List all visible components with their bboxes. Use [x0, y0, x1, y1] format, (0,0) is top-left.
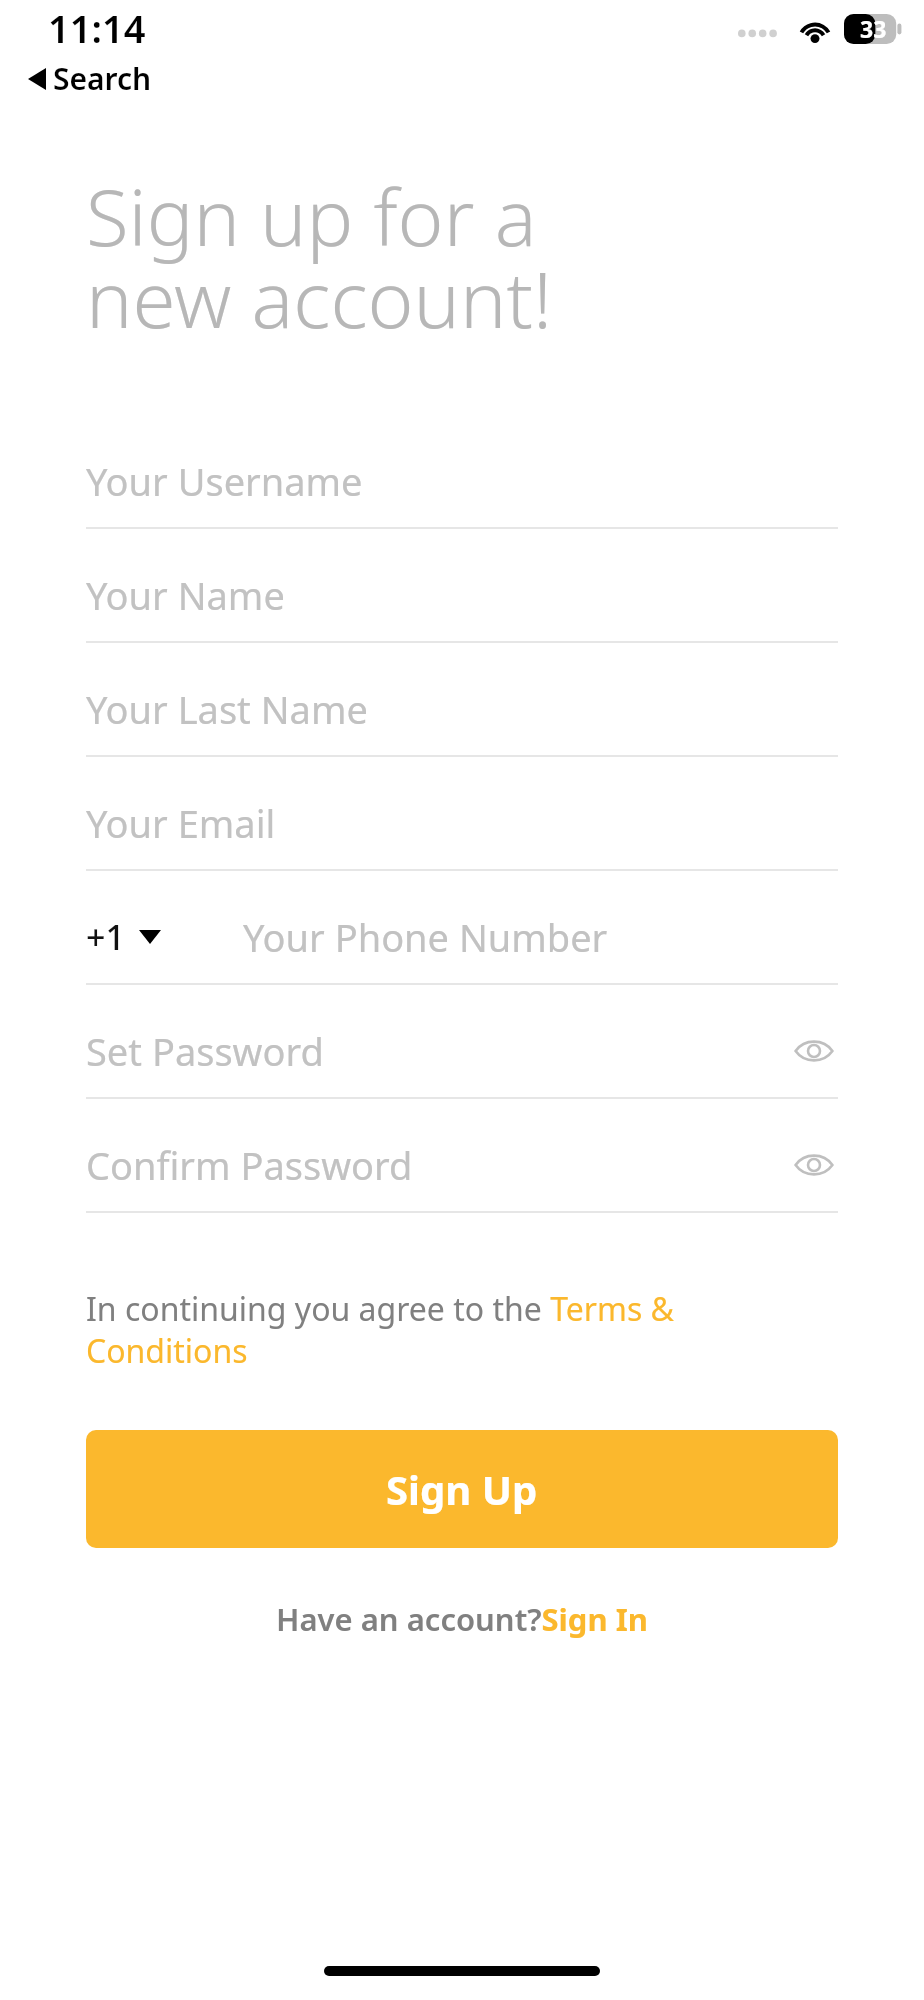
button[interactable]: Your Email: [86, 777, 838, 871]
button[interactable]: Your Last Name: [86, 663, 838, 757]
button[interactable]: Sign Up: [86, 1430, 838, 1548]
button[interactable]: Your Phone Number: [243, 911, 838, 963]
button[interactable]: +1: [86, 914, 167, 960]
staticText: Sign up for a new account!: [86, 163, 553, 351]
button[interactable]: Your Username: [86, 435, 838, 529]
button[interactable]: Set Password: [86, 1005, 838, 1099]
staticText: Sign Up: [386, 1462, 538, 1516]
staticText: Confirm Password: [86, 1139, 790, 1191]
button[interactable]: Show password: [790, 1027, 838, 1075]
staticText: 11:14: [48, 2, 146, 54]
staticText: 33: [860, 13, 887, 44]
staticText: Your Email: [86, 797, 838, 849]
staticText: Your Last Name: [86, 683, 838, 735]
staticText: Set Password: [86, 1025, 790, 1077]
staticText: +1: [86, 914, 125, 960]
button[interactable]: Have an account?Sign In: [276, 1598, 648, 1640]
button[interactable]: Search: [24, 56, 156, 101]
staticText: Your Username: [86, 455, 838, 507]
button[interactable]: Show confirm password: [790, 1141, 838, 1189]
button[interactable]: Your Name: [86, 549, 838, 643]
staticText: Your Name: [86, 569, 838, 621]
button[interactable]: Confirm Password: [86, 1119, 838, 1213]
button[interactable]: In continuing you agree to the Terms & C…: [86, 1287, 838, 1372]
staticText: Search: [53, 58, 152, 99]
